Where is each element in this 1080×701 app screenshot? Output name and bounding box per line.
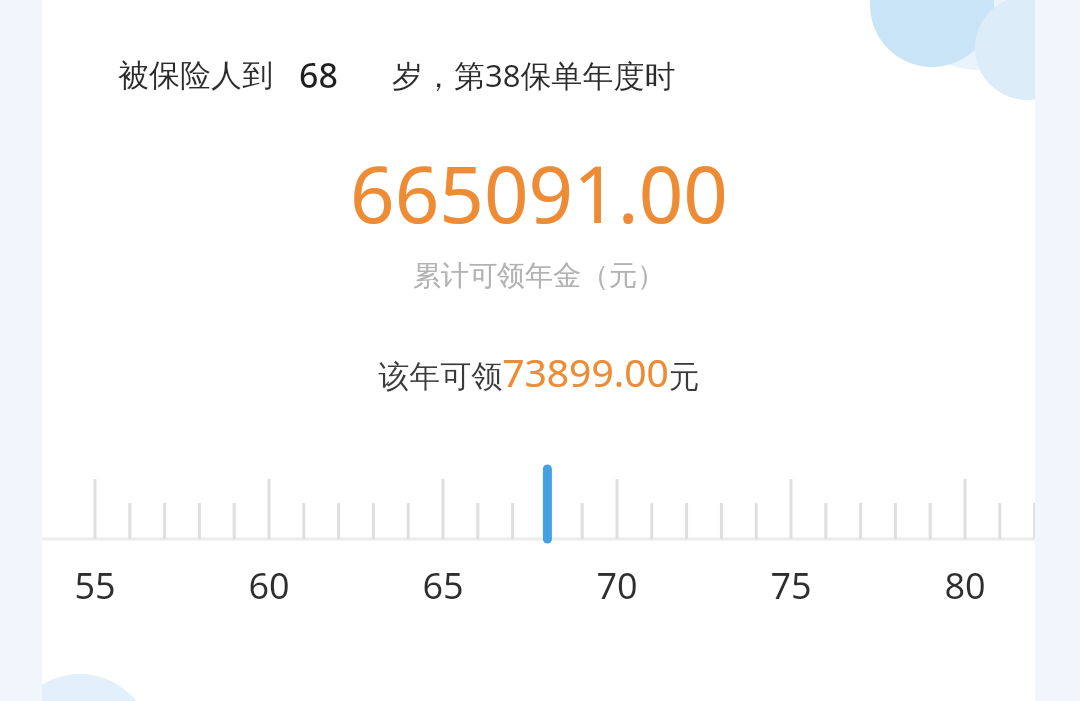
staticText: 被保险人到 bbox=[118, 56, 273, 95]
staticText: 该年可领73899.00元 bbox=[378, 345, 700, 398]
staticText: 665091.00 bbox=[350, 140, 728, 246]
staticText: 75 bbox=[761, 561, 821, 610]
staticText: 55 bbox=[65, 561, 125, 610]
button[interactable]: 被保险人到 bbox=[42, 52, 1035, 98]
staticText: 80 bbox=[935, 561, 995, 610]
staticText: 累计可领年金（元） bbox=[413, 258, 665, 293]
staticText: 岁，第38保单年度时 bbox=[392, 54, 676, 96]
staticText: 70 bbox=[587, 561, 647, 610]
button[interactable]: Age selector ruler bbox=[42, 461, 1035, 651]
staticText: 68 bbox=[299, 52, 338, 98]
staticText: 65 bbox=[413, 561, 473, 610]
staticText: 60 bbox=[239, 561, 299, 610]
